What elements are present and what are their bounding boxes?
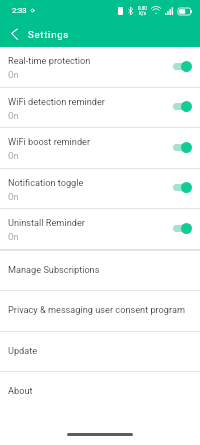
staticText: Real-time protection — [8, 55, 91, 66]
staticText: K/s — [139, 11, 147, 16]
staticText: WiFi boost reminder — [8, 136, 91, 147]
button[interactable]: Update — [0, 331, 200, 371]
staticText: Settings — [28, 29, 70, 40]
staticText: Uninstall Reminder — [8, 217, 85, 228]
staticText: Update — [8, 345, 38, 356]
staticText: Privacy & messaging user consent program — [8, 304, 186, 315]
button[interactable]: WiFi detection reminder — [0, 88, 200, 128]
staticText: On — [8, 111, 19, 121]
staticText: Notification toggle — [8, 177, 84, 188]
staticText: About — [8, 385, 33, 396]
button[interactable]: Uninstall Reminder — [0, 209, 200, 250]
button[interactable]: Notification toggle — [0, 169, 200, 209]
staticText: On — [8, 70, 19, 80]
button[interactable]: WiFi boost reminder — [0, 128, 200, 169]
staticText: On — [8, 151, 19, 161]
staticText: On — [8, 192, 19, 202]
button[interactable]: About — [0, 371, 200, 412]
staticText: On — [8, 232, 19, 242]
staticText: 0.00 — [138, 6, 147, 11]
button[interactable]: Manage Subscriptions — [0, 250, 200, 290]
staticText: 2:33 — [12, 6, 27, 15]
staticText: Manage Subscriptions — [8, 264, 100, 275]
staticText: WiFi detection reminder — [8, 96, 105, 107]
button[interactable]: Real-time protection — [0, 47, 200, 88]
button[interactable]: Privacy & messaging user consent program — [0, 290, 200, 331]
button[interactable]: Back — [1, 21, 27, 47]
